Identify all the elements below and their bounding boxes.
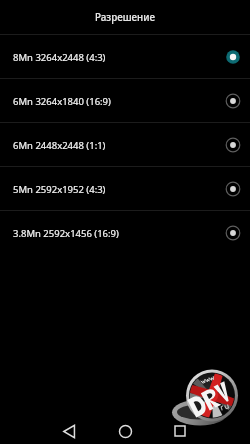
button[interactable]: 3.8Mn 2592x1456 (16:9)	[0, 211, 250, 254]
staticText: 3.8Mn 2592x1456 (16:9)	[13, 227, 225, 240]
staticText: 5Mn 2592x1952 (4:3)	[13, 183, 225, 196]
staticText: 6Mn 2448x2448 (1:1)	[13, 139, 225, 152]
button[interactable]: Home	[108, 414, 142, 444]
button[interactable]: 5Mn 2592x1952 (4:3)	[0, 167, 250, 210]
button[interactable]: 6Mn 3264x1840 (16:9)	[0, 79, 250, 122]
button[interactable]: Back	[52, 414, 86, 444]
staticText: 8Mn 3264x2448 (4:3)	[13, 51, 225, 64]
staticText: 6Mn 3264x1840 (16:9)	[13, 95, 225, 108]
button[interactable]: 8Mn 3264x2448 (4:3)	[0, 35, 250, 78]
button[interactable]: 6Mn 2448x2448 (1:1)	[0, 123, 250, 166]
staticText: Разрешение	[95, 11, 155, 24]
button[interactable]: Recents	[163, 414, 197, 444]
